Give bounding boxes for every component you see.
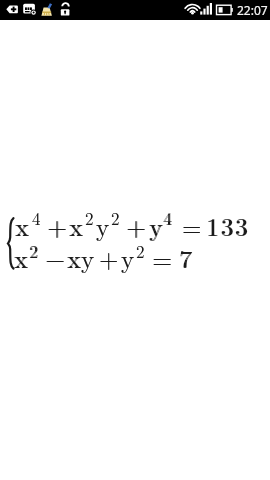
staticText: 2: [29, 239, 38, 263]
staticText: 2: [111, 206, 120, 230]
staticText: y: [81, 240, 95, 275]
staticText: 2: [85, 206, 94, 230]
staticText: y: [96, 208, 110, 243]
staticText: x: [68, 240, 82, 275]
staticText: 133: [207, 208, 251, 243]
staticText: +: [127, 208, 147, 243]
staticText: 2: [136, 239, 145, 263]
staticText: y: [96, 208, 110, 243]
staticText: =: [182, 208, 202, 243]
staticText: +: [99, 240, 119, 275]
staticText: x: [70, 208, 84, 243]
staticText: +: [99, 240, 119, 275]
staticText: 2: [111, 206, 120, 230]
staticText: 4: [32, 206, 41, 230]
staticText: 2: [85, 206, 94, 230]
staticText: 4: [164, 206, 173, 230]
staticText: 4: [32, 206, 41, 230]
staticText: −: [46, 240, 66, 275]
staticText: +: [47, 208, 67, 243]
staticText: 2: [136, 239, 145, 263]
staticText: +: [126, 208, 146, 243]
staticText: x: [15, 208, 29, 243]
staticText: 7: [180, 240, 193, 275]
staticText: y: [81, 240, 95, 275]
staticText: y: [121, 240, 135, 275]
staticText: −: [45, 240, 65, 275]
staticText: 133: [206, 208, 250, 243]
staticText: +: [48, 208, 68, 243]
staticText: 4: [163, 206, 172, 230]
staticText: 7: [179, 240, 192, 275]
staticText: =: [152, 240, 172, 275]
staticText: y: [150, 208, 164, 243]
staticText: =: [182, 208, 202, 243]
staticText: 2: [30, 239, 39, 263]
staticText: y: [149, 208, 163, 243]
staticText: =: [153, 240, 173, 275]
staticText: y: [121, 240, 135, 275]
staticText: x: [15, 240, 29, 275]
staticText: x: [14, 240, 28, 275]
staticText: 22:07: [237, 2, 268, 18]
staticText: x: [69, 208, 83, 243]
staticText: x: [16, 208, 30, 243]
staticText: x: [67, 240, 81, 275]
